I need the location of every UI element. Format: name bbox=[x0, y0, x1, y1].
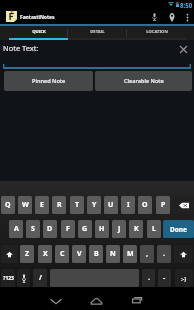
button[interactable]: V bbox=[72, 245, 86, 263]
button[interactable]: P bbox=[156, 196, 170, 214]
button[interactable]: Voice input bbox=[145, 10, 163, 24]
button[interactable]: , bbox=[140, 245, 154, 263]
button[interactable]: W bbox=[18, 196, 32, 214]
button[interactable]: X bbox=[38, 245, 52, 263]
button[interactable]: L bbox=[147, 220, 161, 238]
staticText: Y bbox=[92, 200, 97, 210]
button[interactable]: Location bbox=[163, 10, 181, 24]
staticText: 8:50 bbox=[180, 1, 193, 9]
staticText: D bbox=[47, 224, 53, 234]
staticText: - bbox=[163, 273, 166, 283]
button[interactable]: F bbox=[61, 220, 75, 238]
button[interactable]: R bbox=[52, 196, 66, 214]
button[interactable]: / bbox=[33, 269, 47, 287]
button[interactable]: T bbox=[70, 196, 84, 214]
button[interactable]: B bbox=[89, 245, 103, 263]
staticText: X bbox=[43, 249, 48, 259]
button[interactable]: A bbox=[9, 220, 23, 238]
button[interactable]: Clear text bbox=[176, 42, 190, 56]
staticText: W bbox=[22, 200, 29, 210]
staticText: Pinned Note bbox=[32, 77, 66, 85]
button[interactable]: Back bbox=[37, 287, 75, 310]
staticText: N bbox=[110, 249, 116, 259]
button[interactable]: ?123 bbox=[1, 269, 15, 287]
staticText: C bbox=[60, 249, 65, 259]
button[interactable]: K bbox=[129, 220, 143, 238]
staticText: I bbox=[127, 200, 130, 210]
button[interactable]: . bbox=[157, 245, 171, 263]
staticText: G bbox=[82, 224, 88, 234]
staticText: ?123 bbox=[3, 275, 14, 282]
staticText: Clearable Note bbox=[124, 77, 164, 85]
button[interactable]: U bbox=[104, 196, 118, 214]
staticText: B bbox=[94, 249, 99, 259]
button[interactable]: More options bbox=[181, 10, 194, 24]
button[interactable]: QUICK bbox=[9, 26, 68, 40]
button[interactable]: O bbox=[138, 196, 152, 214]
staticText: T bbox=[75, 200, 80, 210]
button[interactable]: Recents bbox=[117, 287, 155, 310]
staticText: Z bbox=[25, 249, 30, 259]
staticText: / bbox=[39, 273, 42, 283]
staticText: R bbox=[57, 200, 62, 210]
button[interactable]: H bbox=[95, 220, 109, 238]
button[interactable]: I bbox=[121, 196, 135, 214]
staticText: QUICK bbox=[32, 29, 46, 35]
button[interactable]: Q bbox=[1, 196, 15, 214]
button[interactable]: S bbox=[26, 220, 40, 238]
staticText: , bbox=[146, 249, 148, 259]
staticText: . bbox=[163, 249, 165, 259]
staticText: H bbox=[99, 224, 105, 234]
staticText: FantastiNotes bbox=[20, 14, 55, 21]
staticText: E bbox=[40, 200, 44, 210]
staticText: P bbox=[161, 200, 166, 210]
button[interactable]: Home bbox=[77, 287, 115, 310]
staticText: K bbox=[134, 224, 139, 234]
button[interactable]: D bbox=[43, 220, 57, 238]
button[interactable]: Z bbox=[20, 245, 34, 263]
button[interactable]: N bbox=[106, 245, 120, 263]
button[interactable]: C bbox=[55, 245, 69, 263]
staticText: O bbox=[142, 200, 148, 210]
staticText: V bbox=[77, 249, 82, 259]
staticText: J bbox=[118, 224, 121, 234]
button[interactable]: Clearable Note bbox=[95, 71, 192, 91]
button[interactable]: . bbox=[142, 269, 155, 287]
staticText: :-) bbox=[181, 275, 187, 282]
button[interactable]: Y bbox=[87, 196, 101, 214]
staticText: . bbox=[148, 273, 150, 283]
staticText: S bbox=[31, 224, 35, 234]
button[interactable]: DETAIL bbox=[68, 26, 127, 40]
button[interactable]: - bbox=[158, 269, 171, 287]
button[interactable]: LOCATION bbox=[127, 26, 186, 40]
button[interactable]: G bbox=[78, 220, 92, 238]
button[interactable]: Shift bbox=[174, 245, 193, 263]
staticText: DETAIL bbox=[90, 29, 105, 35]
staticText: M bbox=[127, 249, 134, 259]
staticText: LOCATION bbox=[146, 29, 168, 35]
button[interactable]: J bbox=[112, 220, 126, 238]
button[interactable]: Voice input bbox=[17, 269, 30, 287]
button[interactable]: Done bbox=[163, 220, 194, 238]
staticText: Q bbox=[5, 200, 11, 210]
staticText: U bbox=[108, 200, 114, 210]
staticText: Done bbox=[170, 225, 187, 234]
button[interactable]: Pinned Note bbox=[4, 71, 93, 91]
button[interactable]: Shift bbox=[1, 245, 18, 263]
staticText: A bbox=[14, 224, 19, 234]
button[interactable]: :-) bbox=[175, 269, 193, 287]
staticText: L bbox=[152, 224, 156, 234]
button[interactable]: Backspace bbox=[173, 196, 194, 214]
staticText: Note Text: bbox=[3, 43, 39, 53]
button[interactable]: E bbox=[35, 196, 49, 214]
button[interactable]: M bbox=[123, 245, 137, 263]
staticText: F bbox=[66, 224, 70, 234]
